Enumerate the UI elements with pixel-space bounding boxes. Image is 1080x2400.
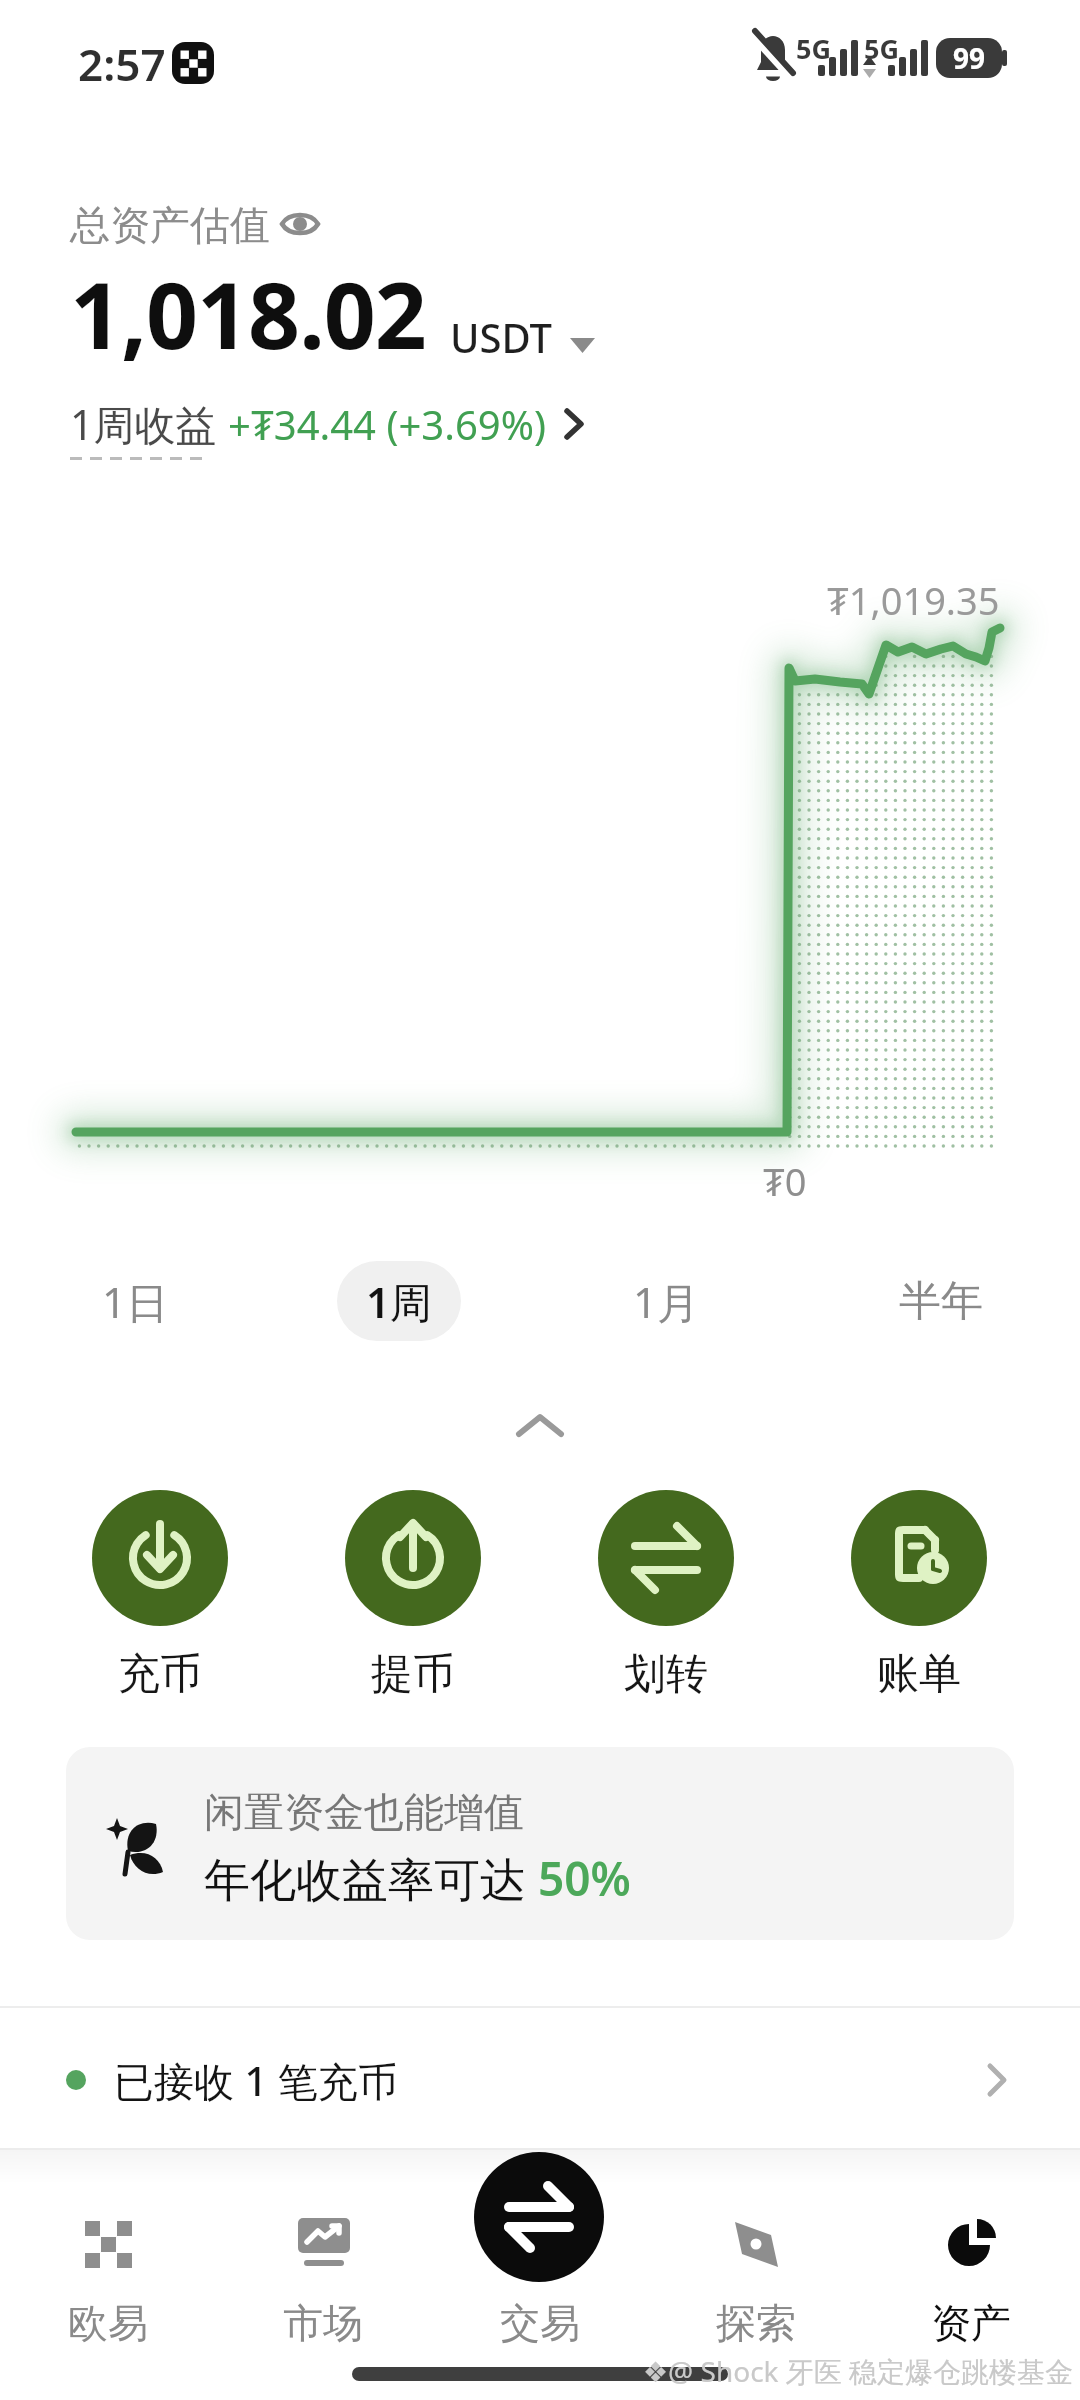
button[interactable] [474, 2152, 604, 2282]
staticText: USDT [450, 310, 553, 364]
staticText: 50% [538, 1847, 631, 1910]
staticText: 资产 [931, 2298, 1011, 2348]
staticText: 半年 [899, 1275, 983, 1328]
button[interactable]: 欧易 [18, 2170, 198, 2360]
button[interactable]: 充币 [76, 1490, 244, 1701]
staticText: 交易 [500, 2298, 580, 2348]
button[interactable]: 已接收 1 笔充币 [0, 2012, 1080, 2148]
button[interactable]: 划转 [582, 1490, 750, 1701]
staticText: 市场 [283, 2298, 363, 2348]
staticText: 总资产估值 [70, 200, 270, 250]
staticText: 99 [953, 39, 986, 77]
staticText: 提币 [371, 1648, 455, 1701]
staticText: 年化收益率可达 [204, 1847, 538, 1910]
button[interactable]: 交易 [450, 2170, 630, 2360]
staticText: 5G [796, 30, 831, 67]
staticText: 1日 [102, 1273, 169, 1330]
button[interactable]: 提币 [329, 1490, 497, 1701]
staticText: ₮1,019.35 [827, 574, 1000, 620]
button[interactable]: 探索 [666, 2170, 846, 2360]
staticText: 1周收益 [70, 396, 217, 452]
staticText: 1月 [633, 1273, 700, 1330]
staticText: 5G [864, 30, 899, 67]
button[interactable]: 半年 [879, 1261, 1003, 1341]
staticText: 账单 [877, 1648, 961, 1701]
staticText: +₮34.44 (+3.69%) [228, 397, 546, 451]
button[interactable]: 总资产估值 [70, 200, 320, 250]
button[interactable] [508, 1408, 572, 1448]
button[interactable]: 资产 [881, 2170, 1061, 2360]
staticText: 2:57 [78, 34, 166, 94]
staticText: 欧易 [68, 2298, 148, 2348]
staticText: 1,018.02 [70, 252, 426, 376]
button[interactable]: 闲置资金也能增值 [66, 1747, 1014, 1940]
button[interactable]: 1月 [604, 1261, 728, 1341]
staticText: 探索 [716, 2298, 796, 2348]
staticText: 闲置资金也能增值 [204, 1787, 524, 1837]
staticText: 划转 [624, 1648, 708, 1701]
button[interactable]: 1周 [337, 1261, 461, 1341]
button[interactable]: 1周收益 [70, 396, 588, 460]
staticText: ₮0 [763, 1155, 807, 1201]
staticText: 1周 [366, 1273, 433, 1330]
button[interactable]: 1日 [73, 1261, 197, 1341]
button[interactable]: 账单 [835, 1490, 1003, 1701]
staticText: 充币 [118, 1648, 202, 1701]
button[interactable]: 市场 [233, 2170, 413, 2360]
button[interactable]: 1,018.02 [70, 252, 595, 376]
staticText: 已接收 1 笔充币 [114, 2053, 398, 2108]
staticText: ❖@ Shock 牙医 稳定爆仓跳楼基金 [643, 2352, 1074, 2390]
